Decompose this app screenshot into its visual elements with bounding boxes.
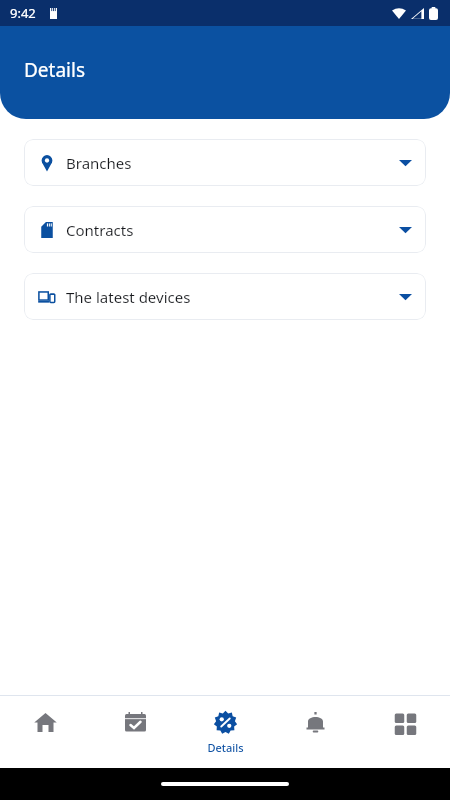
staticText: Details xyxy=(24,57,86,83)
staticText: Branches xyxy=(66,153,132,173)
button[interactable]: Branches xyxy=(24,139,426,186)
staticText: Contracts xyxy=(66,220,134,240)
button[interactable]: Calendar xyxy=(90,696,180,735)
button[interactable]: Details xyxy=(180,696,270,755)
button[interactable]: The latest devices xyxy=(24,273,426,320)
staticText: The latest devices xyxy=(66,287,191,307)
button[interactable]: Home xyxy=(0,696,90,735)
button[interactable]: Notifications xyxy=(270,696,360,735)
staticText: 9:42 xyxy=(10,4,36,22)
staticText: Details xyxy=(207,740,244,755)
button[interactable]: Contracts xyxy=(24,206,426,253)
button[interactable]: Apps xyxy=(360,696,450,735)
